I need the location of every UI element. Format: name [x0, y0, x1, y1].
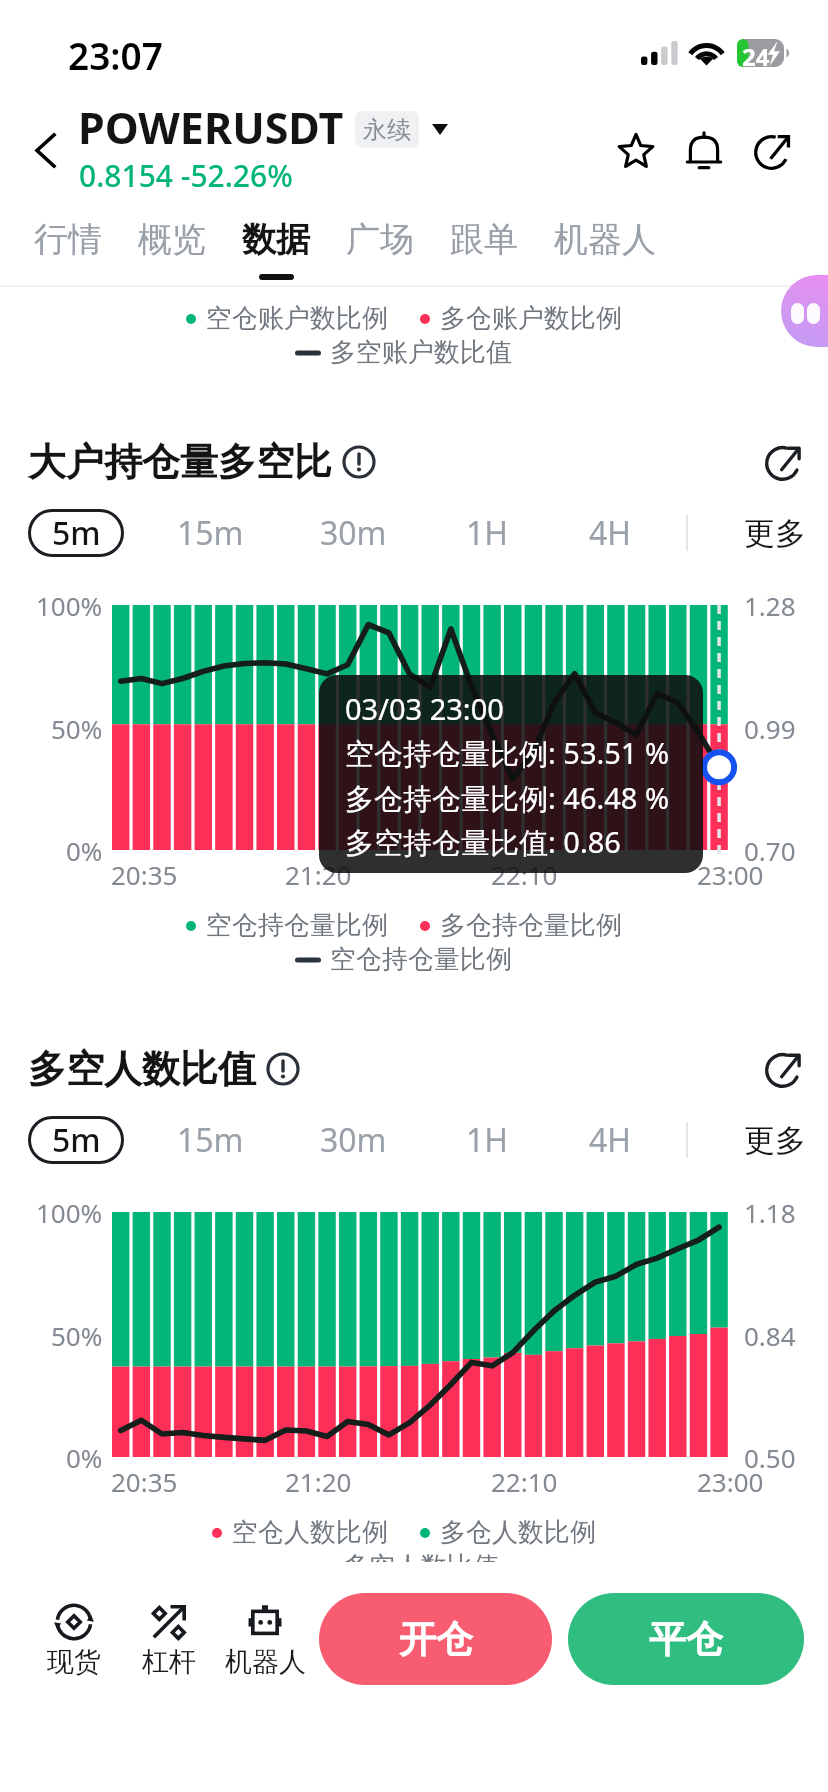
staticText: 21:20 [285, 1464, 352, 1499]
button[interactable]: 更多 [744, 1112, 806, 1168]
staticText: 0.70 [744, 833, 796, 868]
staticText: 15m [177, 1118, 244, 1162]
staticText: 机器人 [554, 218, 656, 261]
button[interactable]: 4H [564, 505, 656, 561]
staticText: 多仓人数比例 [440, 1516, 596, 1549]
staticText: 50% [51, 711, 103, 746]
staticText: 100% [36, 588, 103, 623]
button[interactable]: 开仓 [319, 1593, 552, 1685]
staticText: 21:20 [285, 857, 352, 892]
button[interactable]: 数据 [224, 204, 328, 282]
staticText: 24 [742, 40, 770, 68]
staticText: 永续 [363, 115, 411, 145]
button[interactable]: 更多 [744, 505, 806, 561]
button[interactable]: Back [17, 122, 73, 178]
button[interactable]: 1H [441, 1112, 533, 1168]
button[interactable]: 杠杆 [119, 1598, 219, 1690]
button[interactable]: 广场 [328, 204, 432, 282]
staticText: 0.84 [744, 1318, 796, 1353]
button[interactable]: 30m [307, 505, 399, 561]
staticText: 4H [589, 511, 632, 555]
button[interactable]: 4H [564, 1112, 656, 1168]
staticText: 23:00 [697, 857, 764, 892]
staticText: 广场 [346, 218, 414, 261]
staticText: 多空人数比值 [28, 1045, 256, 1093]
button[interactable]: 5m [28, 509, 124, 557]
staticText: 1H [466, 1118, 509, 1162]
button[interactable]: 行情 [16, 204, 120, 282]
staticText: 空仓人数比例 [232, 1516, 388, 1549]
staticText: 多仓持仓量比例 [440, 909, 622, 942]
staticText: 20:35 [111, 1464, 178, 1499]
staticText: 0% [66, 1440, 103, 1475]
button[interactable]: Price alert [677, 124, 731, 178]
button[interactable]: 机器人 [536, 204, 674, 282]
button[interactable]: 跟单 [432, 204, 536, 282]
button[interactable]: AI assistant [781, 275, 828, 347]
staticText: 1H [466, 511, 509, 555]
staticText: 0.99 [744, 711, 796, 746]
staticText: 03/03 23:00 [345, 689, 504, 728]
staticText: 空仓账户数比例 [206, 302, 388, 335]
button[interactable]: 15m [164, 505, 256, 561]
staticText: 数据 [242, 218, 310, 261]
button[interactable]: 5m [28, 1116, 124, 1164]
staticText: 1.28 [744, 588, 796, 623]
staticText: 更多 [744, 1121, 806, 1160]
button[interactable]: Favourite [609, 124, 663, 178]
staticText: 23:00 [697, 1464, 764, 1499]
staticText: 大户持仓量多空比 [28, 438, 332, 486]
staticText: 多仓持仓量比例: 46.48 % [345, 778, 670, 818]
staticText: 50% [51, 1318, 103, 1353]
staticText: 23:07 [68, 30, 163, 80]
button[interactable]: Open full chart [758, 1043, 810, 1095]
staticText: 5m [52, 1118, 101, 1162]
staticText: 行情 [34, 218, 102, 261]
staticText: 20:35 [111, 857, 178, 892]
staticText: 5m [52, 511, 101, 555]
staticText: 0% [66, 833, 103, 868]
staticText: 4H [589, 1118, 632, 1162]
staticText: 概览 [138, 218, 206, 261]
staticText: 平仓 [649, 1616, 723, 1663]
staticText: 多空人数比值 [343, 1550, 499, 1583]
staticText: 更多 [744, 514, 806, 553]
staticText: 30m [320, 511, 387, 555]
staticText: 空仓持仓量比例: 53.51 % [345, 733, 670, 773]
button[interactable]: 平仓 [568, 1593, 804, 1685]
button[interactable]: 1H [441, 505, 533, 561]
staticText: 多仓账户数比例 [440, 302, 622, 335]
button[interactable]: 现货 [24, 1598, 124, 1690]
staticText: 22:10 [491, 1464, 558, 1499]
button[interactable]: 30m [307, 1112, 399, 1168]
button[interactable]: 概览 [120, 204, 224, 282]
staticText: 0.8154 -52.26% [79, 155, 293, 196]
staticText: 跟单 [450, 218, 518, 261]
staticText: 22:10 [491, 857, 558, 892]
staticText: 杠杆 [142, 1645, 196, 1677]
staticText: 多空持仓量比值: 0.86 [345, 822, 621, 862]
staticText: 30m [320, 1118, 387, 1162]
staticText: 100% [36, 1195, 103, 1230]
staticText: 空仓持仓量比例 [206, 909, 388, 942]
staticText: 0.50 [744, 1440, 796, 1475]
button[interactable]: Share [746, 124, 800, 178]
button[interactable]: Open full chart [758, 436, 810, 488]
staticText: POWERUSDT [78, 98, 344, 157]
staticText: 现货 [47, 1645, 101, 1677]
staticText: 空仓持仓量比例 [330, 943, 512, 976]
button[interactable]: 15m [164, 1112, 256, 1168]
staticText: 开仓 [399, 1616, 473, 1663]
staticText: 多空账户数比值 [330, 336, 512, 369]
button[interactable]: 机器人 [215, 1598, 315, 1690]
staticText: 15m [177, 511, 244, 555]
staticText: 1.18 [744, 1195, 796, 1230]
staticText: 机器人 [225, 1645, 306, 1677]
